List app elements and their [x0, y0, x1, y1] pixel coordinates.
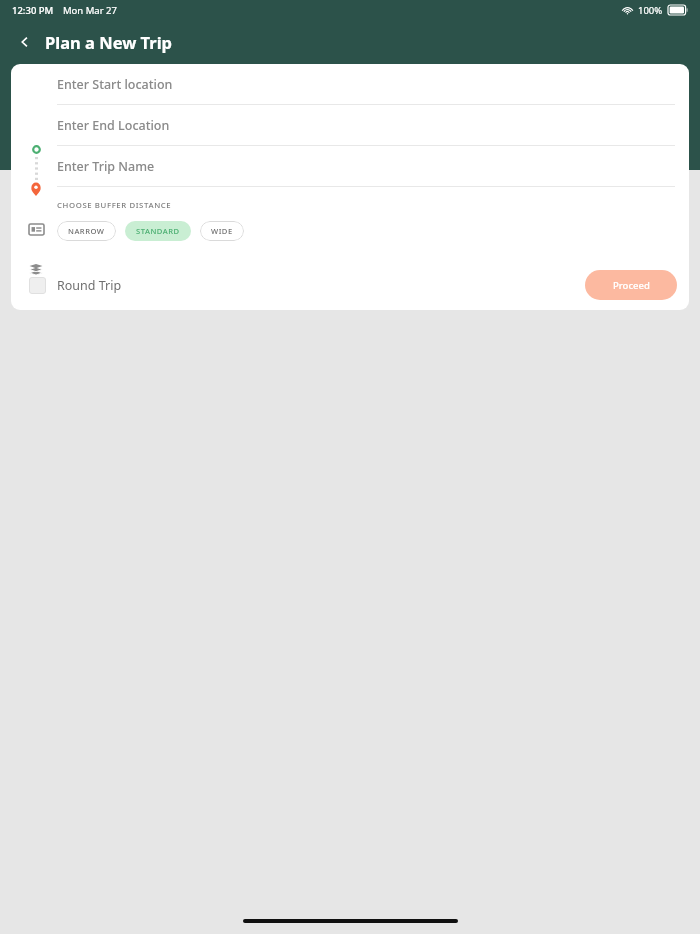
staticText: 100% — [638, 4, 663, 17]
button[interactable]: Enter Start location — [57, 64, 689, 105]
staticText: Proceed — [613, 279, 650, 292]
button[interactable]: Enter Trip Name — [57, 146, 689, 187]
staticText: Enter Trip Name — [57, 158, 155, 175]
button[interactable]: Enter End Location — [57, 105, 689, 146]
button[interactable]: WIDE — [200, 221, 244, 241]
staticText: Enter Start location — [57, 76, 173, 93]
button[interactable]: Round Trip — [29, 277, 122, 294]
staticText: WIDE — [211, 226, 233, 236]
staticText: NARROW — [68, 226, 105, 236]
button[interactable]: STANDARD — [125, 221, 191, 241]
staticText: Round Trip — [57, 277, 122, 294]
staticText: STANDARD — [136, 226, 180, 236]
button[interactable]: NARROW — [57, 221, 116, 241]
staticText: CHOOSE BUFFER DISTANCE — [57, 200, 172, 211]
staticText: Mon Mar 27 — [63, 4, 117, 17]
staticText: 12:30 PM — [12, 4, 54, 17]
button[interactable]: Proceed — [585, 270, 677, 300]
staticText: Plan a New Trip — [45, 31, 173, 53]
button[interactable]: Back — [10, 27, 40, 57]
staticText: Enter End Location — [57, 117, 170, 134]
